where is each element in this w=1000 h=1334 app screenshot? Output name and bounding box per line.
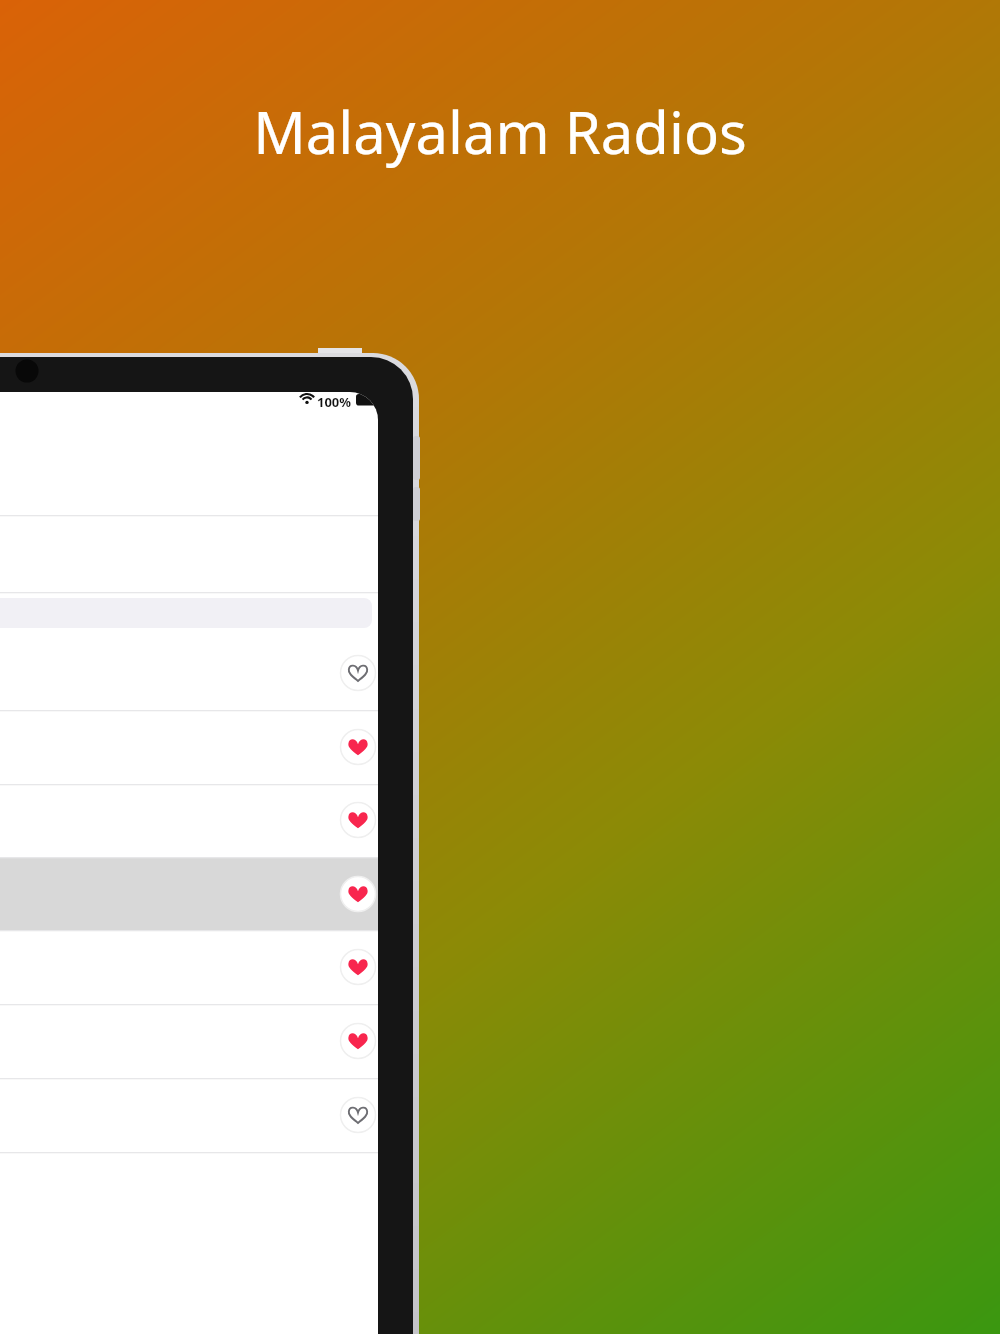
button[interactable]: Remove from favourites [340,729,376,765]
button[interactable]: Remove from favourites [340,1023,376,1059]
button[interactable]: Add to favourites [340,655,376,691]
button[interactable]: Remove from favourites [340,802,376,838]
button[interactable]: Search [0,596,372,628]
button[interactable] [0,1078,378,1152]
button[interactable]: Add to favourites [340,1097,376,1133]
button[interactable] [0,930,378,1004]
button[interactable] [0,857,378,930]
button[interactable] [0,1004,378,1078]
button[interactable]: Remove from favourites [340,876,376,912]
button[interactable] [0,784,378,857]
button[interactable]: Remove from favourites [340,949,376,985]
button[interactable] [0,710,378,784]
button[interactable] [0,636,378,710]
staticText: Malayalam Radios [0,92,1000,1334]
staticText: 100% [317,393,352,411]
